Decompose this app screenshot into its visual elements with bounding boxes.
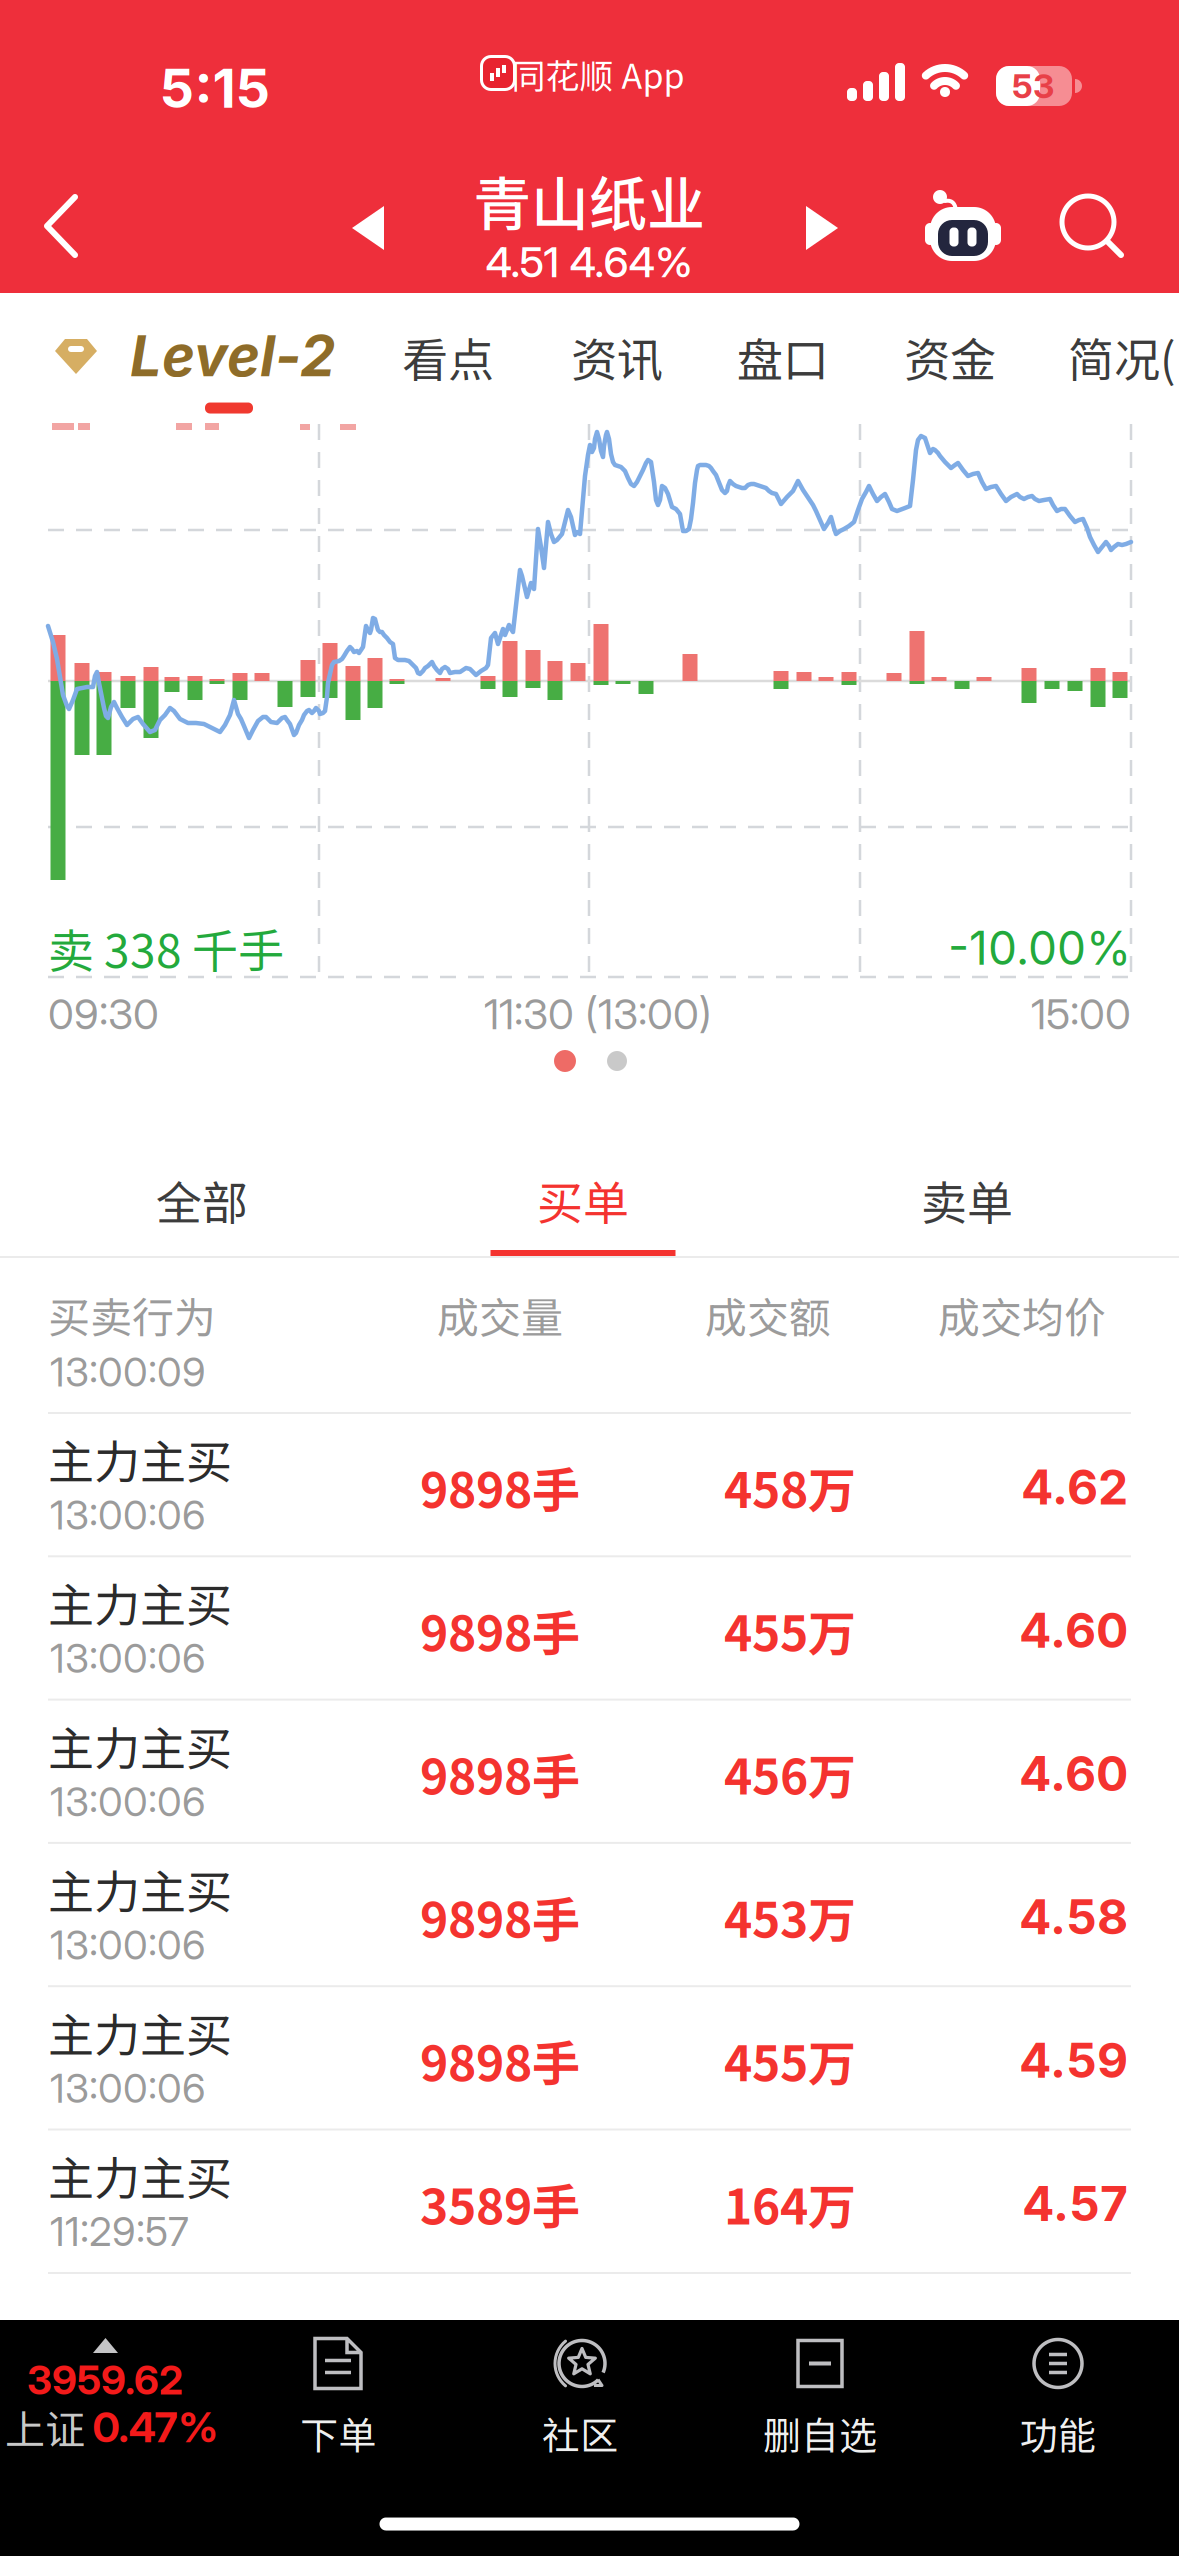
staticText: 13:00:06 [50,1634,206,1682]
staticText: 社区 [542,2405,618,2460]
button[interactable]: 资金 [880,324,1020,390]
button[interactable]: 全部 [82,1155,322,1245]
staticText: 9898手 [420,1739,580,1808]
staticText: 4.62 [1021,1458,1128,1516]
staticText: 4.57 [1022,2174,1128,2233]
button[interactable]: Back [31,186,111,266]
staticText: 4.59 [1019,2031,1128,2089]
staticText: 买卖行为 [48,1285,216,1345]
button[interactable]: Next stock [792,198,852,258]
staticText: 13:00:06 [50,1491,206,1539]
button[interactable]: 盘口 [713,324,853,390]
staticText: 453万 [724,1882,856,1952]
staticText: 9898手 [420,2025,580,2095]
staticText: 11:30 (13:00) [484,989,712,1039]
button[interactable]: 简况(F10) [1068,324,1179,390]
staticText: 4.58 [1019,1888,1128,1946]
staticText: 卖 338 千手 [48,915,284,981]
staticText: 功能 [1020,2405,1096,2460]
button[interactable]: 主力主买 [0,1843,1179,1986]
staticText: 上证 [5,2398,85,2456]
button[interactable]: Level-2 [130,322,390,390]
button[interactable]: Assistant [918,185,1008,275]
button[interactable]: Level-2 [47,334,105,380]
staticText: 4.60 [1019,1601,1128,1659]
staticText: 下单 [300,2405,376,2460]
staticText: 13:00:06 [50,2064,206,2112]
button[interactable]: 删自选 [720,2333,920,2463]
staticText: 买单 [537,1167,629,1233]
staticText: 卖单 [921,1167,1013,1233]
button[interactable]: 卖单 [847,1155,1087,1245]
staticText: 5:15 [159,55,270,121]
staticText: 9898手 [420,1452,580,1522]
staticText: Level-2 [130,322,335,390]
staticText: 455万 [724,1595,856,1665]
staticText: 资金 [904,324,996,390]
staticText: 主力主买 [48,1712,232,1779]
staticText: 看点 [402,324,494,390]
button[interactable]: 功能 [958,2333,1158,2463]
staticText: 9898手 [420,1595,580,1665]
button[interactable]: 社区 [480,2333,680,2463]
staticText: 4.51 4.64% [485,237,692,287]
staticText: 成交额 [705,1285,831,1345]
staticText: 164万 [724,2169,856,2238]
button[interactable]: 买单 [463,1155,703,1245]
staticText: 455万 [724,2025,856,2095]
staticText: 458万 [724,1452,856,1522]
staticText: 4.60 [1019,1745,1128,1803]
staticText: 主力主买 [48,1569,232,1636]
staticText: 主力主买 [48,1426,232,1492]
button[interactable]: Previous stock [338,198,398,258]
button[interactable]: 上证指数 [0,2338,230,2448]
staticText: 09:30 [48,989,159,1039]
staticText: 全部 [156,1167,248,1233]
button[interactable]: 主力主买 [0,2129,1179,2272]
staticText: 盘口 [737,324,829,390]
staticText: 11:29:57 [50,2207,189,2256]
staticText: 主力主买 [48,1856,232,1922]
staticText: 53 [1012,65,1054,106]
staticText: 3959.62 [27,2356,183,2404]
staticText: 同花顺 App [511,49,684,99]
staticText: -10.00% [948,920,1131,976]
staticText: 资讯 [571,324,663,390]
staticText: 456万 [724,1739,856,1808]
staticText: 0.47% [92,2402,217,2452]
button[interactable]: 主力主买 [0,1413,1179,1556]
staticText: 青山纸业 [473,158,705,242]
staticText: 13:00:06 [50,1777,206,1826]
staticText: 13:00:09 [50,1348,206,1396]
staticText: 主力主买 [48,1999,232,2065]
staticText: 成交量 [437,1285,563,1345]
staticText: 9898手 [420,1882,580,1952]
staticText: 简况(F10) [1068,324,1179,390]
staticText: 13:00:06 [50,1921,206,1969]
button[interactable]: 主力主买 [0,1700,1179,1843]
staticText: 15:00 [1031,989,1131,1039]
button[interactable]: 看点 [378,324,518,390]
staticText: 3589手 [420,2169,580,2238]
staticText: 成交均价 [938,1285,1106,1345]
staticText: 主力主买 [48,2142,232,2209]
button[interactable]: 资讯 [547,324,687,390]
button[interactable]: 主力主买 [0,1556,1179,1699]
staticText: 删自选 [763,2405,877,2460]
button[interactable]: 下单 [238,2333,438,2463]
button[interactable]: 主力主买 [0,1986,1179,2129]
button[interactable]: Search [1053,190,1133,270]
